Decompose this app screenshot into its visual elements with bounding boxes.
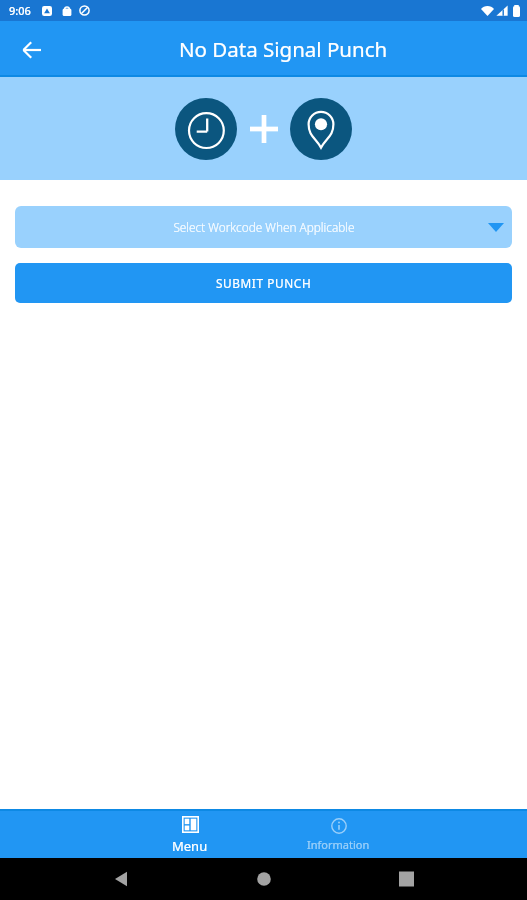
button[interactable]: Back	[13, 31, 50, 68]
staticText: Information	[307, 837, 370, 852]
button[interactable]: Clock punch	[175, 98, 237, 160]
staticText: Menu	[172, 837, 208, 855]
button[interactable]: Information	[264, 809, 413, 858]
staticText: No Data Signal Punch	[179, 35, 388, 63]
button[interactable]: Menu	[115, 809, 264, 858]
button[interactable]: Location punch	[290, 98, 352, 160]
button[interactable]: Select Workcode When Applicable	[15, 206, 512, 248]
staticText: SUBMIT PUNCH	[216, 275, 312, 291]
button[interactable]: SUBMIT PUNCH	[15, 263, 512, 303]
staticText: 9:06	[9, 3, 31, 18]
staticText: Select Workcode When Applicable	[173, 219, 355, 235]
